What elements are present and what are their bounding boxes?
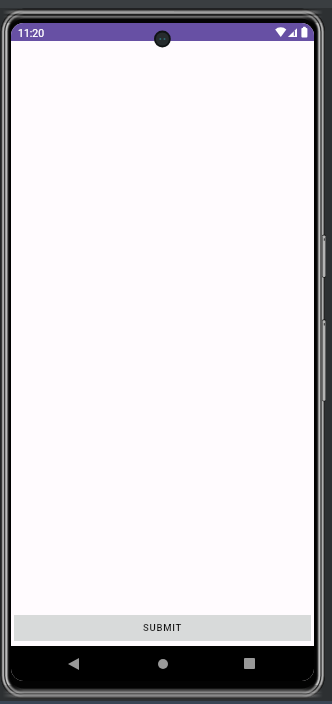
button[interactable]: Back xyxy=(45,646,102,681)
button[interactable]: SUBMIT xyxy=(14,615,311,641)
button[interactable]: Recents xyxy=(221,646,278,681)
staticText: SUBMIT xyxy=(143,622,183,633)
button[interactable]: Home xyxy=(134,646,191,681)
staticText: 11:20 xyxy=(18,27,45,39)
